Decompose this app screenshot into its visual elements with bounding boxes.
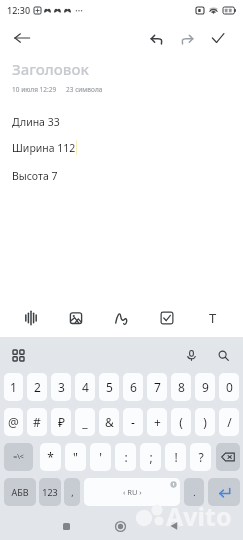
button[interactable]: Redo: [174, 25, 200, 51]
button[interactable]: ,: [64, 478, 80, 506]
button[interactable]: *: [40, 443, 61, 471]
button[interactable]: 2: [27, 373, 47, 401]
staticText: (: [179, 414, 183, 430]
button[interactable]: Text format: [198, 303, 228, 333]
button[interactable]: 5: [99, 373, 119, 401]
staticText: 1: [10, 379, 17, 395]
button[interactable]: Recents: [52, 512, 80, 540]
staticText: -: [131, 414, 135, 430]
button[interactable]: #: [27, 408, 47, 436]
staticText: 8: [178, 379, 185, 395]
staticText: +: [154, 414, 161, 430]
button[interactable]: -: [123, 408, 143, 436]
button[interactable]: Undo: [143, 25, 169, 51]
button[interactable]: 3: [51, 373, 71, 401]
staticText: Ширина 112: [12, 141, 76, 155]
staticText: ?: [198, 449, 204, 465]
staticText: #: [33, 414, 41, 430]
button[interactable]: .: [184, 478, 204, 506]
staticText: 12:30: [7, 4, 31, 16]
button[interactable]: ;: [140, 443, 161, 471]
button[interactable]: 9: [195, 373, 215, 401]
button[interactable]: 8: [171, 373, 191, 401]
button[interactable]: Back: [9, 25, 35, 51]
staticText: Avito: [166, 499, 232, 533]
staticText: 4: [82, 379, 89, 395]
staticText: ‹ RU ›: [123, 487, 142, 497]
button[interactable]: =\<: [4, 443, 33, 471]
staticText: _: [82, 414, 88, 430]
staticText: 5: [106, 379, 113, 395]
staticText: ₽: [58, 414, 65, 430]
staticText: Высота 7: [12, 169, 58, 183]
button[interactable]: ': [90, 443, 111, 471]
button[interactable]: Done: [205, 25, 231, 51]
staticText: &: [105, 414, 114, 430]
staticText: 10 июля 12:29: [12, 85, 57, 94]
button[interactable]: !: [165, 443, 186, 471]
staticText: ): [203, 414, 207, 430]
button[interactable]: 1: [4, 373, 23, 401]
button[interactable]: ‹ RU ›: [84, 478, 180, 506]
staticText: !: [174, 449, 178, 465]
button[interactable]: ": [65, 443, 86, 471]
staticText: =\<: [13, 452, 24, 462]
staticText: 23 символа: [66, 85, 103, 94]
staticText: Длина 33: [12, 115, 60, 129]
staticText: 9: [202, 379, 209, 395]
button[interactable]: Enter: [208, 478, 240, 506]
button[interactable]: (: [171, 408, 191, 436]
button[interactable]: /: [219, 408, 239, 436]
button[interactable]: 4: [75, 373, 95, 401]
button[interactable]: Search: [213, 345, 233, 365]
button[interactable]: 123: [39, 478, 61, 506]
button[interactable]: ): [195, 408, 215, 436]
staticText: *: [47, 449, 54, 465]
staticText: ": [73, 449, 78, 465]
staticText: 2: [34, 379, 41, 395]
staticText: 3: [58, 379, 65, 395]
staticText: 7: [154, 379, 161, 395]
button[interactable]: @: [4, 408, 23, 436]
staticText: :: [124, 449, 128, 465]
staticText: АБВ: [11, 486, 29, 498]
button[interactable]: Backspace: [216, 443, 240, 471]
staticText: 0: [226, 379, 233, 395]
button[interactable]: Voice input: [181, 345, 201, 365]
staticText: ;: [149, 449, 153, 465]
button[interactable]: 6: [123, 373, 143, 401]
staticText: ,: [71, 486, 74, 498]
button[interactable]: Image: [61, 303, 91, 333]
staticText: /: [227, 414, 232, 430]
button[interactable]: Back: [160, 512, 188, 540]
button[interactable]: Checklist: [152, 303, 182, 333]
staticText: T: [209, 309, 217, 327]
button[interactable]: 7: [147, 373, 167, 401]
button[interactable]: ?: [190, 443, 211, 471]
button[interactable]: ₽: [51, 408, 71, 436]
button[interactable]: 0: [219, 373, 239, 401]
staticText: .: [193, 486, 196, 498]
button[interactable]: +: [147, 408, 167, 436]
staticText: 123: [42, 486, 58, 498]
button[interactable]: &: [99, 408, 119, 436]
button[interactable]: :: [115, 443, 136, 471]
staticText: @: [8, 414, 19, 430]
staticText: 6: [130, 379, 137, 395]
button[interactable]: АБВ: [4, 478, 36, 506]
button[interactable]: Audio: [16, 303, 46, 333]
button[interactable]: Draw: [107, 303, 137, 333]
staticText: Заголовок: [12, 59, 89, 79]
button[interactable]: Home: [106, 512, 134, 540]
staticText: ': [99, 449, 102, 465]
button[interactable]: _: [75, 408, 95, 436]
button[interactable]: Keyboard menu: [8, 345, 28, 365]
